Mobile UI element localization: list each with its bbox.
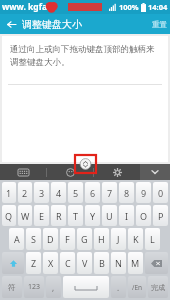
button[interactable]: Q bbox=[2, 205, 16, 226]
button[interactable]: Y bbox=[85, 205, 100, 226]
button[interactable]: K bbox=[128, 228, 143, 250]
staticText: 符 bbox=[8, 283, 16, 292]
staticText: 完成 bbox=[151, 283, 165, 292]
button[interactable]: 3 bbox=[34, 182, 49, 203]
staticText: T bbox=[73, 210, 79, 222]
staticText: N bbox=[115, 257, 122, 269]
staticText: 7 bbox=[107, 187, 113, 199]
button[interactable]: O bbox=[136, 205, 151, 226]
button[interactable]: 6 bbox=[85, 182, 100, 203]
button[interactable]: P bbox=[153, 205, 168, 226]
button[interactable]: 8 bbox=[119, 182, 134, 203]
staticText: 123 bbox=[28, 282, 41, 292]
staticText: H bbox=[98, 233, 105, 245]
staticText: 14:04 bbox=[148, 2, 168, 12]
button[interactable]: 0 bbox=[153, 182, 168, 203]
staticText: 3 bbox=[39, 187, 45, 199]
staticText: C bbox=[65, 257, 71, 269]
button[interactable]: G bbox=[77, 228, 92, 250]
button[interactable]: Resize keyboard handle bbox=[75, 155, 96, 173]
button[interactable]: 1 bbox=[2, 182, 16, 203]
staticText: B bbox=[99, 257, 105, 269]
staticText: M bbox=[131, 257, 140, 269]
button[interactable]: 完成 bbox=[148, 276, 168, 298]
staticText: O bbox=[140, 210, 148, 222]
staticText: 5 bbox=[73, 187, 79, 199]
staticText: Z bbox=[31, 257, 37, 269]
button[interactable]: C bbox=[60, 252, 75, 274]
button[interactable]: A bbox=[9, 228, 24, 250]
button[interactable]: Hide keyboard bbox=[140, 164, 170, 180]
staticText: Y bbox=[90, 210, 96, 222]
button[interactable]: /En bbox=[128, 276, 146, 298]
staticText: V bbox=[82, 257, 88, 269]
button[interactable]: M bbox=[128, 252, 143, 274]
button[interactable] bbox=[2, 252, 24, 274]
button[interactable]: U bbox=[102, 205, 117, 226]
staticText: D bbox=[47, 233, 54, 245]
staticText: S bbox=[31, 233, 36, 245]
staticText: R bbox=[56, 210, 62, 222]
staticText: J bbox=[117, 233, 120, 245]
staticText: X bbox=[48, 257, 54, 269]
button[interactable]: , bbox=[46, 276, 61, 298]
button[interactable]: Back bbox=[4, 17, 18, 31]
button[interactable]: 重置 bbox=[152, 20, 167, 29]
staticText: 调整键盘大小 bbox=[22, 18, 82, 31]
staticText: www. kgfa bbox=[2, 1, 48, 13]
button[interactable]: E bbox=[34, 205, 49, 226]
staticText: E bbox=[39, 210, 45, 222]
staticText: P bbox=[158, 210, 164, 222]
button[interactable]: 7 bbox=[102, 182, 117, 203]
staticText: 6 bbox=[90, 187, 96, 199]
button[interactable]: 4 bbox=[51, 182, 66, 203]
button[interactable]: J bbox=[111, 228, 126, 250]
button[interactable]: V bbox=[77, 252, 92, 274]
button[interactable]: L bbox=[145, 228, 160, 250]
staticText: I bbox=[125, 210, 129, 222]
staticText: F bbox=[65, 233, 70, 245]
staticText: 8 bbox=[124, 187, 130, 199]
button[interactable]: Settings bbox=[94, 164, 140, 180]
button[interactable]: Keyboard layout bbox=[0, 164, 46, 180]
staticText: L bbox=[150, 233, 155, 245]
staticText: W bbox=[21, 210, 30, 222]
staticText: 重置 bbox=[152, 20, 167, 29]
button[interactable]: 5 bbox=[68, 182, 83, 203]
staticText: 4 bbox=[56, 187, 62, 199]
button[interactable] bbox=[145, 252, 168, 274]
button[interactable]: H bbox=[94, 228, 109, 250]
button[interactable]: X bbox=[43, 252, 58, 274]
button[interactable]: D bbox=[43, 228, 58, 250]
button[interactable]: F bbox=[60, 228, 75, 250]
staticText: 1 bbox=[6, 187, 12, 199]
staticText: 9 bbox=[141, 187, 147, 199]
button[interactable]: T bbox=[68, 205, 83, 226]
staticText: 2 bbox=[22, 187, 28, 199]
button[interactable]: I bbox=[119, 205, 134, 226]
button[interactable]: 9 bbox=[136, 182, 151, 203]
staticText: G bbox=[81, 233, 88, 245]
staticText: 100% bbox=[119, 2, 139, 12]
button[interactable]: 123 bbox=[24, 276, 44, 298]
button[interactable]: N bbox=[111, 252, 126, 274]
staticText: Q bbox=[5, 210, 13, 222]
staticText: U bbox=[106, 210, 113, 222]
staticText: , bbox=[52, 282, 55, 293]
button[interactable]: R bbox=[51, 205, 66, 226]
button[interactable]: . bbox=[111, 276, 126, 298]
staticText: /En bbox=[132, 283, 143, 292]
staticText: 0 bbox=[158, 187, 164, 199]
staticText: K bbox=[133, 233, 139, 245]
button[interactable] bbox=[63, 276, 109, 298]
button[interactable]: B bbox=[94, 252, 109, 274]
button[interactable]: Emoji bbox=[47, 164, 93, 180]
button[interactable]: 2 bbox=[18, 182, 32, 203]
button[interactable]: W bbox=[18, 205, 32, 226]
staticText: A bbox=[14, 233, 20, 245]
button[interactable]: 符 bbox=[2, 276, 22, 298]
button[interactable]: S bbox=[26, 228, 41, 250]
staticText: . bbox=[117, 282, 120, 293]
button[interactable]: Z bbox=[26, 252, 41, 274]
staticText: 通过向上或向下拖动键盘顶部的触柄来调整键盘大小。 bbox=[10, 44, 160, 67]
